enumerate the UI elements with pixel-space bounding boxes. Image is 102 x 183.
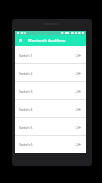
button[interactable]: Toggle switch (73, 51, 82, 60)
button[interactable]: Toggle switch (73, 123, 82, 132)
staticText: Bluetooth Audifono (28, 38, 66, 43)
button[interactable]: Switch 5 (15, 118, 86, 136)
button[interactable]: Toggle switch (73, 87, 82, 96)
button[interactable]: Toggle switch (73, 140, 82, 149)
button[interactable]: Switch 1 (15, 46, 86, 64)
staticText: Switch 3 (19, 89, 33, 94)
staticText: Switch 2 (19, 71, 33, 76)
button[interactable]: Switch 3 (15, 82, 86, 100)
staticText: Switch 4 (19, 107, 33, 112)
button[interactable]: Toggle switch (73, 69, 82, 78)
button[interactable]: Toggle switch (73, 105, 82, 114)
button[interactable]: Switch 4 (15, 100, 86, 118)
staticText: Switch 6 (19, 142, 33, 147)
button[interactable]: Open navigation menu (15, 35, 28, 46)
button[interactable]: Switch 2 (15, 64, 86, 82)
button[interactable]: Switch 6 (15, 136, 86, 153)
staticText: Switch 1 (19, 53, 33, 58)
staticText: Switch 5 (19, 125, 33, 130)
